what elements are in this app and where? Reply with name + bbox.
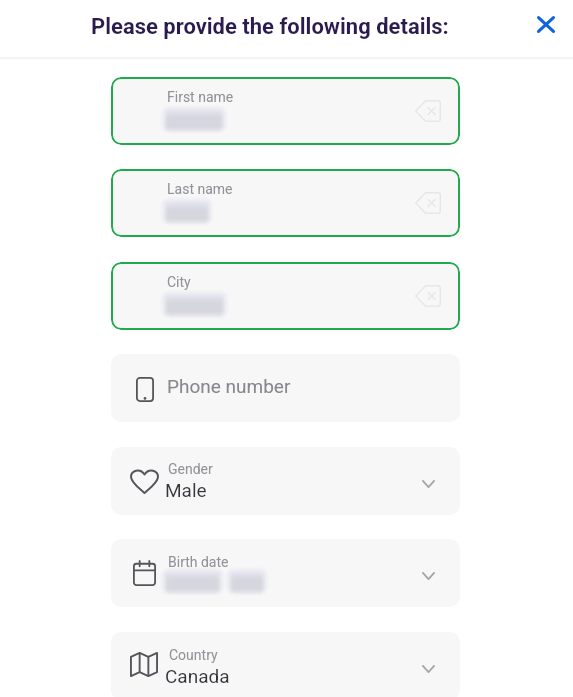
button[interactable]: Gender <box>111 447 460 515</box>
staticText: Gender <box>168 461 213 477</box>
staticText: Phone number <box>167 375 291 397</box>
button[interactable]: Expand <box>408 464 448 504</box>
staticText: Canada <box>165 665 230 687</box>
button[interactable]: First name <box>111 77 460 145</box>
button[interactable]: City <box>111 262 460 330</box>
button[interactable]: Birth date <box>111 539 460 607</box>
staticText: Male <box>165 479 207 501</box>
button[interactable]: Clear text <box>406 181 450 225</box>
button[interactable]: Close <box>524 2 568 46</box>
staticText: Country <box>169 647 218 663</box>
button[interactable]: Clear text <box>406 89 450 133</box>
staticText: First name <box>167 89 234 105</box>
button[interactable]: Last name <box>111 169 460 237</box>
button[interactable]: Expand <box>408 649 448 689</box>
button[interactable]: Phone number <box>111 354 460 422</box>
button[interactable]: Country <box>111 632 460 697</box>
staticText: City <box>167 274 191 290</box>
staticText: Last name <box>167 181 233 197</box>
staticText: Please provide the following details: <box>91 14 449 40</box>
button[interactable]: Clear text <box>406 274 450 318</box>
staticText: Birth date <box>168 554 229 570</box>
button[interactable]: Expand <box>408 556 448 596</box>
